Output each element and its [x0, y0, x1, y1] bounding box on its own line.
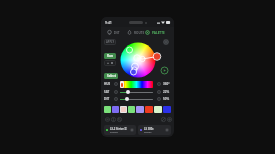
button[interactable]: Play [160, 66, 169, 75]
button[interactable] [112, 106, 119, 113]
staticText: APPLY [106, 40, 115, 44]
button[interactable] [126, 90, 130, 94]
button[interactable] [120, 106, 127, 113]
staticText: ROUTE [134, 31, 145, 35]
staticText: Select [107, 74, 116, 78]
button[interactable]: LS 300c [138, 125, 171, 135]
button[interactable]: ROUTE [126, 28, 146, 37]
button[interactable] [154, 106, 162, 113]
button[interactable]: APPLY [104, 39, 116, 45]
button[interactable]: Globe [166, 116, 172, 122]
staticText: PALETTE [152, 31, 165, 35]
staticText: 50% [163, 97, 170, 101]
staticText: HUE [104, 82, 111, 86]
button[interactable] [145, 106, 153, 113]
button[interactable] [104, 106, 111, 113]
button[interactable] [125, 97, 129, 101]
staticText: SAT [104, 90, 110, 94]
staticText: INT [114, 31, 120, 35]
staticText: LS-2 Strive II [110, 127, 127, 131]
button[interactable] [136, 106, 144, 113]
staticText: STRIKE [110, 131, 118, 134]
button[interactable]: Blend [116, 116, 122, 122]
button[interactable]: Run [104, 53, 116, 59]
button[interactable]: Hide [160, 116, 166, 122]
button[interactable]: PALETTE [144, 28, 166, 37]
staticText: 360° [163, 82, 170, 86]
staticText: LS 300c [144, 127, 154, 131]
button[interactable]: Settings [162, 38, 170, 46]
button[interactable] [163, 106, 171, 113]
button[interactable]: Layers [104, 60, 116, 66]
button[interactable]: Rotate [110, 116, 116, 122]
staticText: Run [107, 54, 113, 58]
button[interactable] [120, 81, 153, 88]
staticText: SERIES [144, 131, 152, 134]
staticText: INT [104, 97, 110, 101]
button[interactable]: Select [104, 73, 118, 79]
button[interactable]: INT [106, 28, 121, 37]
staticText: 22% [163, 90, 170, 94]
button[interactable]: LS-2 Strive II [104, 125, 136, 135]
button[interactable]: Frame [104, 116, 110, 122]
button[interactable] [128, 106, 135, 113]
staticText: 9:41 [105, 20, 112, 25]
